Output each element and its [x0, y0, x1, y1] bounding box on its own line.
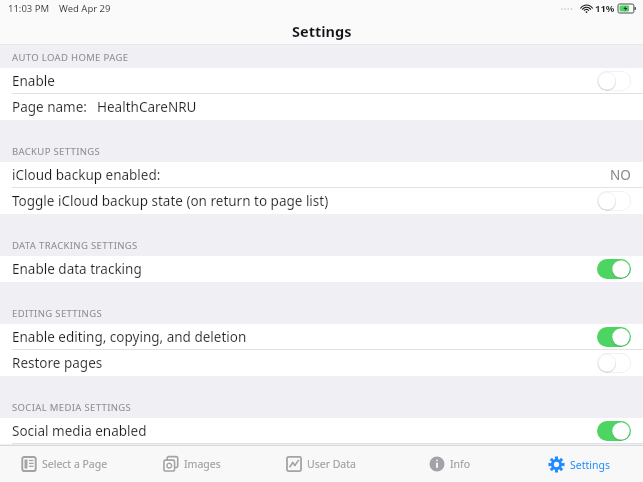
button[interactable]: Restore pages	[0, 350, 643, 376]
button[interactable]: Social media enabled	[0, 418, 643, 444]
button[interactable]: Toggle on	[597, 259, 631, 279]
staticText: Social media enabled	[12, 422, 147, 440]
staticText: Info	[450, 457, 471, 471]
staticText: 11%	[595, 2, 615, 15]
staticText: Toggle iCloud backup state (on return to…	[12, 192, 329, 210]
button[interactable]: Info	[385, 446, 514, 482]
button[interactable]: Enable data tracking	[0, 256, 643, 282]
button[interactable]: User Data	[256, 446, 385, 482]
staticText: Page name:	[12, 98, 87, 116]
button[interactable]: Toggle off	[597, 71, 631, 91]
button[interactable]: Toggle off	[597, 353, 631, 373]
button[interactable]: Page name:	[0, 94, 643, 120]
button[interactable]: Toggle on	[597, 327, 631, 347]
button[interactable]: Toggle on	[597, 421, 631, 441]
staticText: NO	[610, 166, 631, 184]
button[interactable]: Enable	[0, 68, 643, 94]
staticText: Enable editing, copying, and deletion	[12, 328, 247, 346]
button[interactable]: Select a Page	[0, 446, 128, 482]
staticText: AUTO LOAD HOME PAGE	[12, 51, 129, 64]
staticText: Wed Apr 29	[59, 2, 111, 15]
staticText: Images	[184, 457, 221, 471]
staticText: HealthCareNRU	[97, 98, 197, 116]
staticText: User Data	[307, 457, 356, 471]
staticText: DATA TRACKING SETTINGS	[12, 239, 138, 252]
button[interactable]: Toggle iCloud backup state (on return to…	[0, 188, 643, 214]
staticText: Restore pages	[12, 354, 103, 372]
button[interactable]: Toggle off	[597, 191, 631, 211]
staticText: EDITING SETTINGS	[12, 307, 102, 320]
staticText: SOCIAL MEDIA SETTINGS	[12, 401, 132, 414]
staticText: Settings	[570, 458, 610, 472]
staticText: Select a Page	[42, 457, 108, 471]
button[interactable]: Images	[128, 446, 256, 482]
button[interactable]: iCloud backup enabled:	[0, 162, 643, 188]
staticText: iCloud backup enabled:	[12, 166, 161, 184]
staticText: 11:03 PM	[8, 2, 50, 15]
button[interactable]: Enable editing, copying, and deletion	[0, 324, 643, 350]
staticText: Enable	[12, 72, 55, 90]
staticText: BACKUP SETTINGS	[12, 145, 101, 158]
button[interactable]: Settings	[514, 446, 643, 482]
staticText: Settings	[292, 21, 352, 41]
staticText: Enable data tracking	[12, 260, 142, 278]
